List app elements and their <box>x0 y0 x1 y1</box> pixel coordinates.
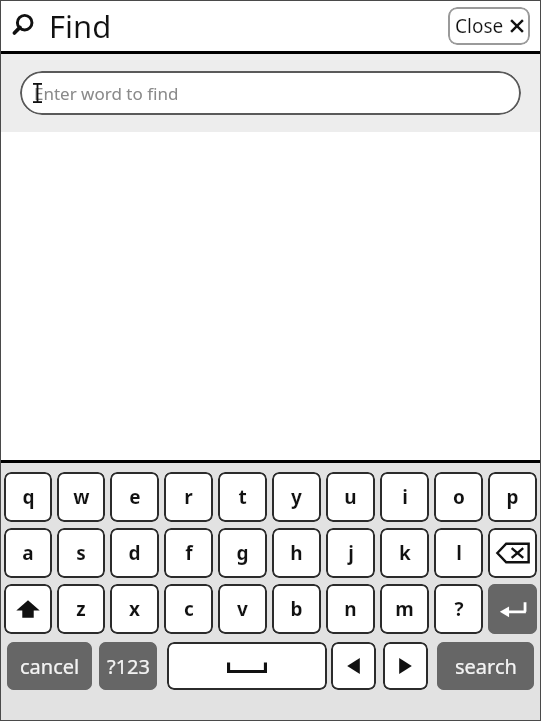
staticText: r <box>184 484 193 510</box>
button[interactable] <box>4 584 52 634</box>
staticText: Close <box>455 13 504 39</box>
button[interactable]: r <box>164 472 213 522</box>
button[interactable]: Enter word to find <box>20 71 521 115</box>
button[interactable]: t <box>218 472 267 522</box>
staticText: y <box>291 484 302 510</box>
button[interactable]: l <box>434 528 483 578</box>
staticText: ?123 <box>107 653 150 680</box>
staticText: f <box>185 540 193 566</box>
staticText: m <box>395 596 414 622</box>
staticText: z <box>76 596 86 622</box>
staticText: n <box>344 596 357 622</box>
button[interactable]: Space <box>167 642 327 690</box>
staticText: k <box>399 540 411 566</box>
staticText: i <box>402 484 408 510</box>
button[interactable]: f <box>164 528 213 578</box>
button[interactable]: a <box>4 528 52 578</box>
button[interactable]: b <box>272 584 321 634</box>
button[interactable]: u <box>326 472 375 522</box>
staticText: Enter word to find <box>34 82 179 105</box>
button[interactable]: Move right <box>383 642 428 690</box>
staticText: p <box>506 484 519 510</box>
staticText: t <box>238 484 247 510</box>
staticText: ? <box>454 596 464 622</box>
button[interactable]: g <box>218 528 267 578</box>
button[interactable]: Enter <box>488 584 537 634</box>
button[interactable]: search <box>437 642 534 690</box>
staticText: j <box>348 540 354 566</box>
staticText: search <box>455 653 517 680</box>
staticText: b <box>290 596 303 622</box>
button[interactable]: Close <box>448 7 530 45</box>
button[interactable]: d <box>110 528 159 578</box>
button[interactable]: c <box>164 584 213 634</box>
staticText: Find <box>49 5 112 47</box>
staticText: x <box>129 596 140 622</box>
staticText: c <box>184 596 194 622</box>
staticText: v <box>237 596 248 622</box>
button[interactable]: m <box>380 584 429 634</box>
button[interactable]: ? <box>434 584 483 634</box>
button[interactable]: w <box>57 472 105 522</box>
button[interactable]: q <box>4 472 52 522</box>
button[interactable]: Backspace <box>488 528 537 578</box>
button[interactable]: x <box>110 584 159 634</box>
button[interactable]: h <box>272 528 321 578</box>
button[interactable]: z <box>57 584 105 634</box>
staticText: g <box>236 540 249 566</box>
button[interactable]: j <box>326 528 375 578</box>
staticText: s <box>76 540 86 566</box>
button[interactable]: k <box>380 528 429 578</box>
staticText: e <box>129 484 141 510</box>
button[interactable]: n <box>326 584 375 634</box>
staticText: d <box>128 540 141 566</box>
staticText: l <box>456 540 462 566</box>
button[interactable]: Move left <box>331 642 376 690</box>
staticText: a <box>22 540 34 566</box>
staticText: q <box>22 484 35 510</box>
button[interactable]: ?123 <box>99 642 157 690</box>
button[interactable]: o <box>434 472 483 522</box>
staticText: o <box>453 484 465 510</box>
button[interactable]: p <box>488 472 537 522</box>
button[interactable]: v <box>218 584 267 634</box>
button[interactable]: s <box>57 528 105 578</box>
button[interactable]: i <box>380 472 429 522</box>
staticText: h <box>290 540 303 566</box>
staticText: w <box>73 484 90 510</box>
staticText: cancel <box>20 653 80 680</box>
button[interactable]: y <box>272 472 321 522</box>
button[interactable]: e <box>110 472 159 522</box>
staticText: u <box>344 484 357 510</box>
button[interactable]: cancel <box>7 642 92 690</box>
